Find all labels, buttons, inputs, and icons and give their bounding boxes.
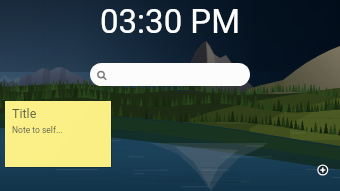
staticText: Title bbox=[12, 106, 37, 121]
button[interactable] bbox=[90, 63, 250, 86]
staticText: Note to self... bbox=[12, 125, 63, 135]
button[interactable]: Title bbox=[5, 101, 111, 167]
button[interactable]: Add shortcut bbox=[311, 158, 335, 182]
staticText: 03:30 PM bbox=[0, 2, 340, 41]
